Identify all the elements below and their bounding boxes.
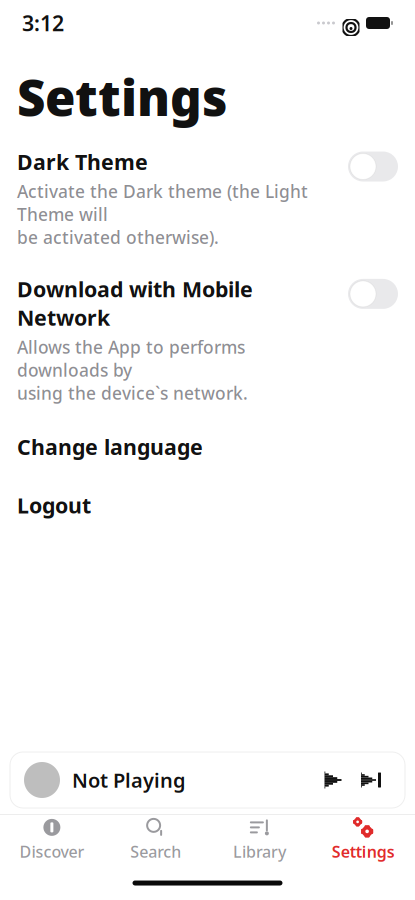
button[interactable]: Next track [351,760,391,800]
staticText: Search [130,841,181,862]
button[interactable]: Library [207,814,311,866]
button[interactable]: Discover [0,814,104,866]
button[interactable]: Settings [311,814,415,866]
staticText: Logout [17,491,91,519]
staticText: 3:12 [22,9,64,37]
button[interactable]: Logout [17,491,398,519]
button[interactable]: Play [315,760,351,800]
staticText: Dark Theme [17,147,148,176]
staticText: Allows the App to performs downloads by … [17,336,248,405]
button[interactable]: Not Playing [10,752,405,808]
staticText: Not Playing [72,767,186,793]
button[interactable]: Change language [17,433,398,461]
staticText: Activate the Dark theme (the Light Theme… [17,180,308,249]
staticText: Library [233,841,286,862]
staticText: Change language [17,433,203,461]
staticText: Discover [19,841,84,862]
staticText: Download with Mobile Network [17,275,253,332]
staticText: Settings [332,841,395,862]
button[interactable]: Search [104,814,208,866]
staticText: Settings [17,64,228,129]
button[interactable]: Download with Mobile Network [17,275,398,405]
button[interactable]: Dark Theme [17,147,398,249]
